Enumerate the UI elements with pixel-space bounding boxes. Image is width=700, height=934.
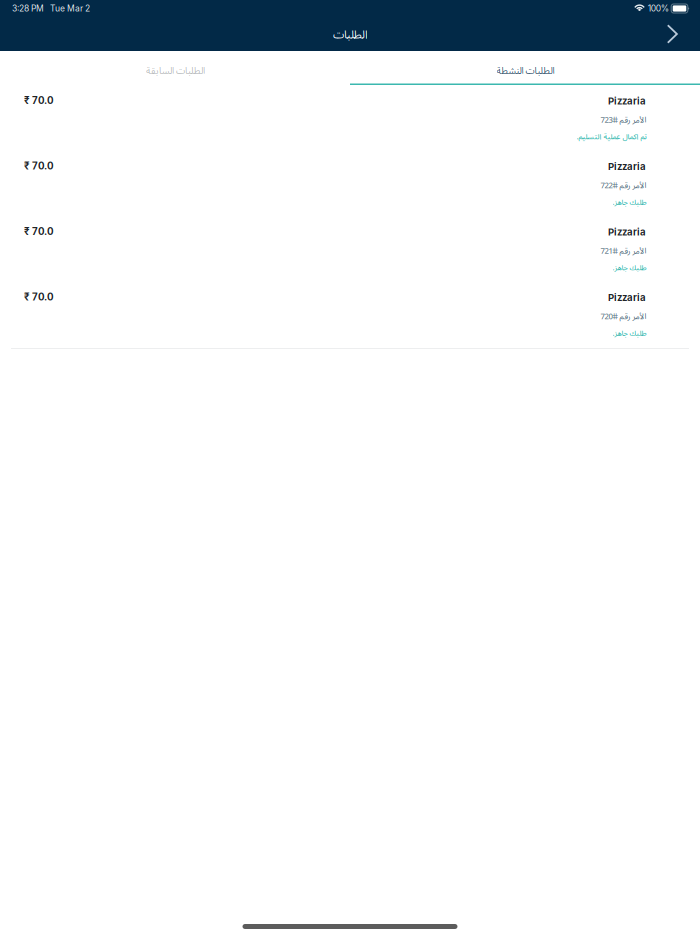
staticText: الأمر رقم #720 bbox=[600, 311, 646, 322]
button[interactable]: الطلبات السابقة bbox=[0, 51, 350, 86]
staticText: Pizzaria bbox=[608, 95, 646, 107]
staticText: ₹ 70.0 bbox=[24, 160, 54, 172]
staticText: ₹ 70.0 bbox=[24, 94, 54, 106]
staticText: Pizzaria bbox=[608, 292, 646, 303]
button[interactable]: الطلبات النشطة bbox=[350, 51, 700, 86]
button[interactable]: ₹ 70.0 bbox=[0, 86, 700, 151]
staticText: طلبك جاهز. bbox=[612, 197, 646, 207]
staticText: طلبك جاهز. bbox=[612, 328, 646, 338]
staticText: ₹ 70.0 bbox=[24, 291, 54, 303]
staticText: طلبك جاهز. bbox=[612, 262, 646, 273]
button[interactable]: Next bbox=[655, 18, 700, 50]
staticText: ₹ 70.0 bbox=[24, 225, 54, 237]
staticText: Tue Mar 2 bbox=[50, 3, 90, 14]
button[interactable]: ₹ 70.0 bbox=[0, 151, 700, 217]
staticText: 3:28 PM bbox=[12, 3, 44, 14]
staticText: Pizzaria bbox=[608, 161, 646, 172]
staticText: الطلبات النشطة bbox=[496, 64, 554, 77]
staticText: 100% bbox=[648, 3, 669, 14]
staticText: الأمر رقم #721 bbox=[600, 245, 646, 256]
button[interactable]: ₹ 70.0 bbox=[0, 217, 700, 282]
staticText: Pizzaria bbox=[608, 226, 646, 238]
button[interactable]: ₹ 70.0 bbox=[0, 282, 700, 348]
staticText: تم اكمال عملية التسليم. bbox=[576, 131, 646, 142]
staticText: الأمر رقم #722 bbox=[600, 180, 646, 191]
staticText: الطلبات السابقة bbox=[145, 64, 204, 77]
staticText: الطلبات bbox=[332, 26, 367, 42]
staticText: الأمر رقم #723 bbox=[600, 114, 646, 125]
